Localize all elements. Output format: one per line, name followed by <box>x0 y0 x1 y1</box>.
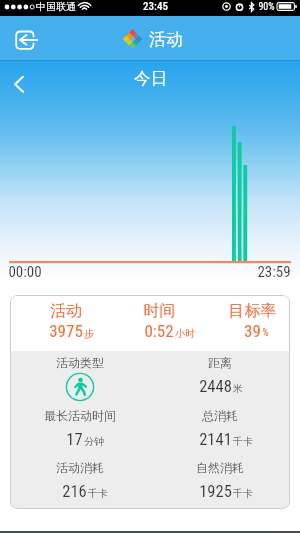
button[interactable]: 目标率 <box>206 295 290 351</box>
button[interactable]: 活动 <box>19 295 113 351</box>
staticText: 3975 <box>49 321 83 341</box>
staticText: 步 <box>84 327 94 340</box>
staticText: 千卡 <box>88 487 108 500</box>
button[interactable]: Back <box>8 65 32 93</box>
button[interactable]: 总消耗 <box>150 404 290 456</box>
button[interactable]: 时间 <box>113 295 206 351</box>
staticText: 千卡 <box>233 435 253 448</box>
button[interactable]: 活动消耗 <box>10 456 150 508</box>
staticText: 分钟 <box>84 435 104 448</box>
staticText: 17 <box>66 430 83 449</box>
staticText: 39 <box>244 321 261 341</box>
staticText: 23:59 <box>257 263 291 281</box>
staticText: 总消耗 <box>150 408 290 423</box>
staticText: 今日 <box>134 68 167 89</box>
staticText: 2448 <box>199 377 232 396</box>
staticText: 小时 <box>175 327 195 340</box>
button[interactable]: Exit <box>10 25 40 51</box>
button[interactable]: 距离 <box>150 351 290 403</box>
staticText: 中国联通 <box>36 0 76 13</box>
staticText: 目标率 <box>206 301 290 321</box>
staticText: 时间 <box>113 301 206 321</box>
staticText: 216 <box>62 482 87 501</box>
staticText: 活动 <box>19 301 113 321</box>
staticText: % <box>262 327 269 339</box>
staticText: 2141 <box>199 430 232 449</box>
staticText: 23:45 <box>143 0 168 13</box>
staticText: 自然消耗 <box>150 460 290 475</box>
staticText: 活动消耗 <box>10 460 150 475</box>
staticText: 活动 <box>149 29 183 50</box>
other: Walking <box>66 373 94 401</box>
staticText: 活动类型 <box>10 355 150 370</box>
staticText: 90% <box>258 1 275 13</box>
staticText: 00:00 <box>8 263 42 281</box>
staticText: 0:52 <box>144 321 174 341</box>
button[interactable]: 活动类型 <box>10 351 150 403</box>
staticText: 千卡 <box>233 487 253 500</box>
button[interactable]: 自然消耗 <box>150 456 290 508</box>
button[interactable]: 最长活动时间 <box>10 404 150 456</box>
staticText: 距离 <box>150 355 290 370</box>
staticText: 米 <box>233 382 243 395</box>
staticText: 1925 <box>199 482 232 501</box>
staticText: 最长活动时间 <box>10 408 150 423</box>
